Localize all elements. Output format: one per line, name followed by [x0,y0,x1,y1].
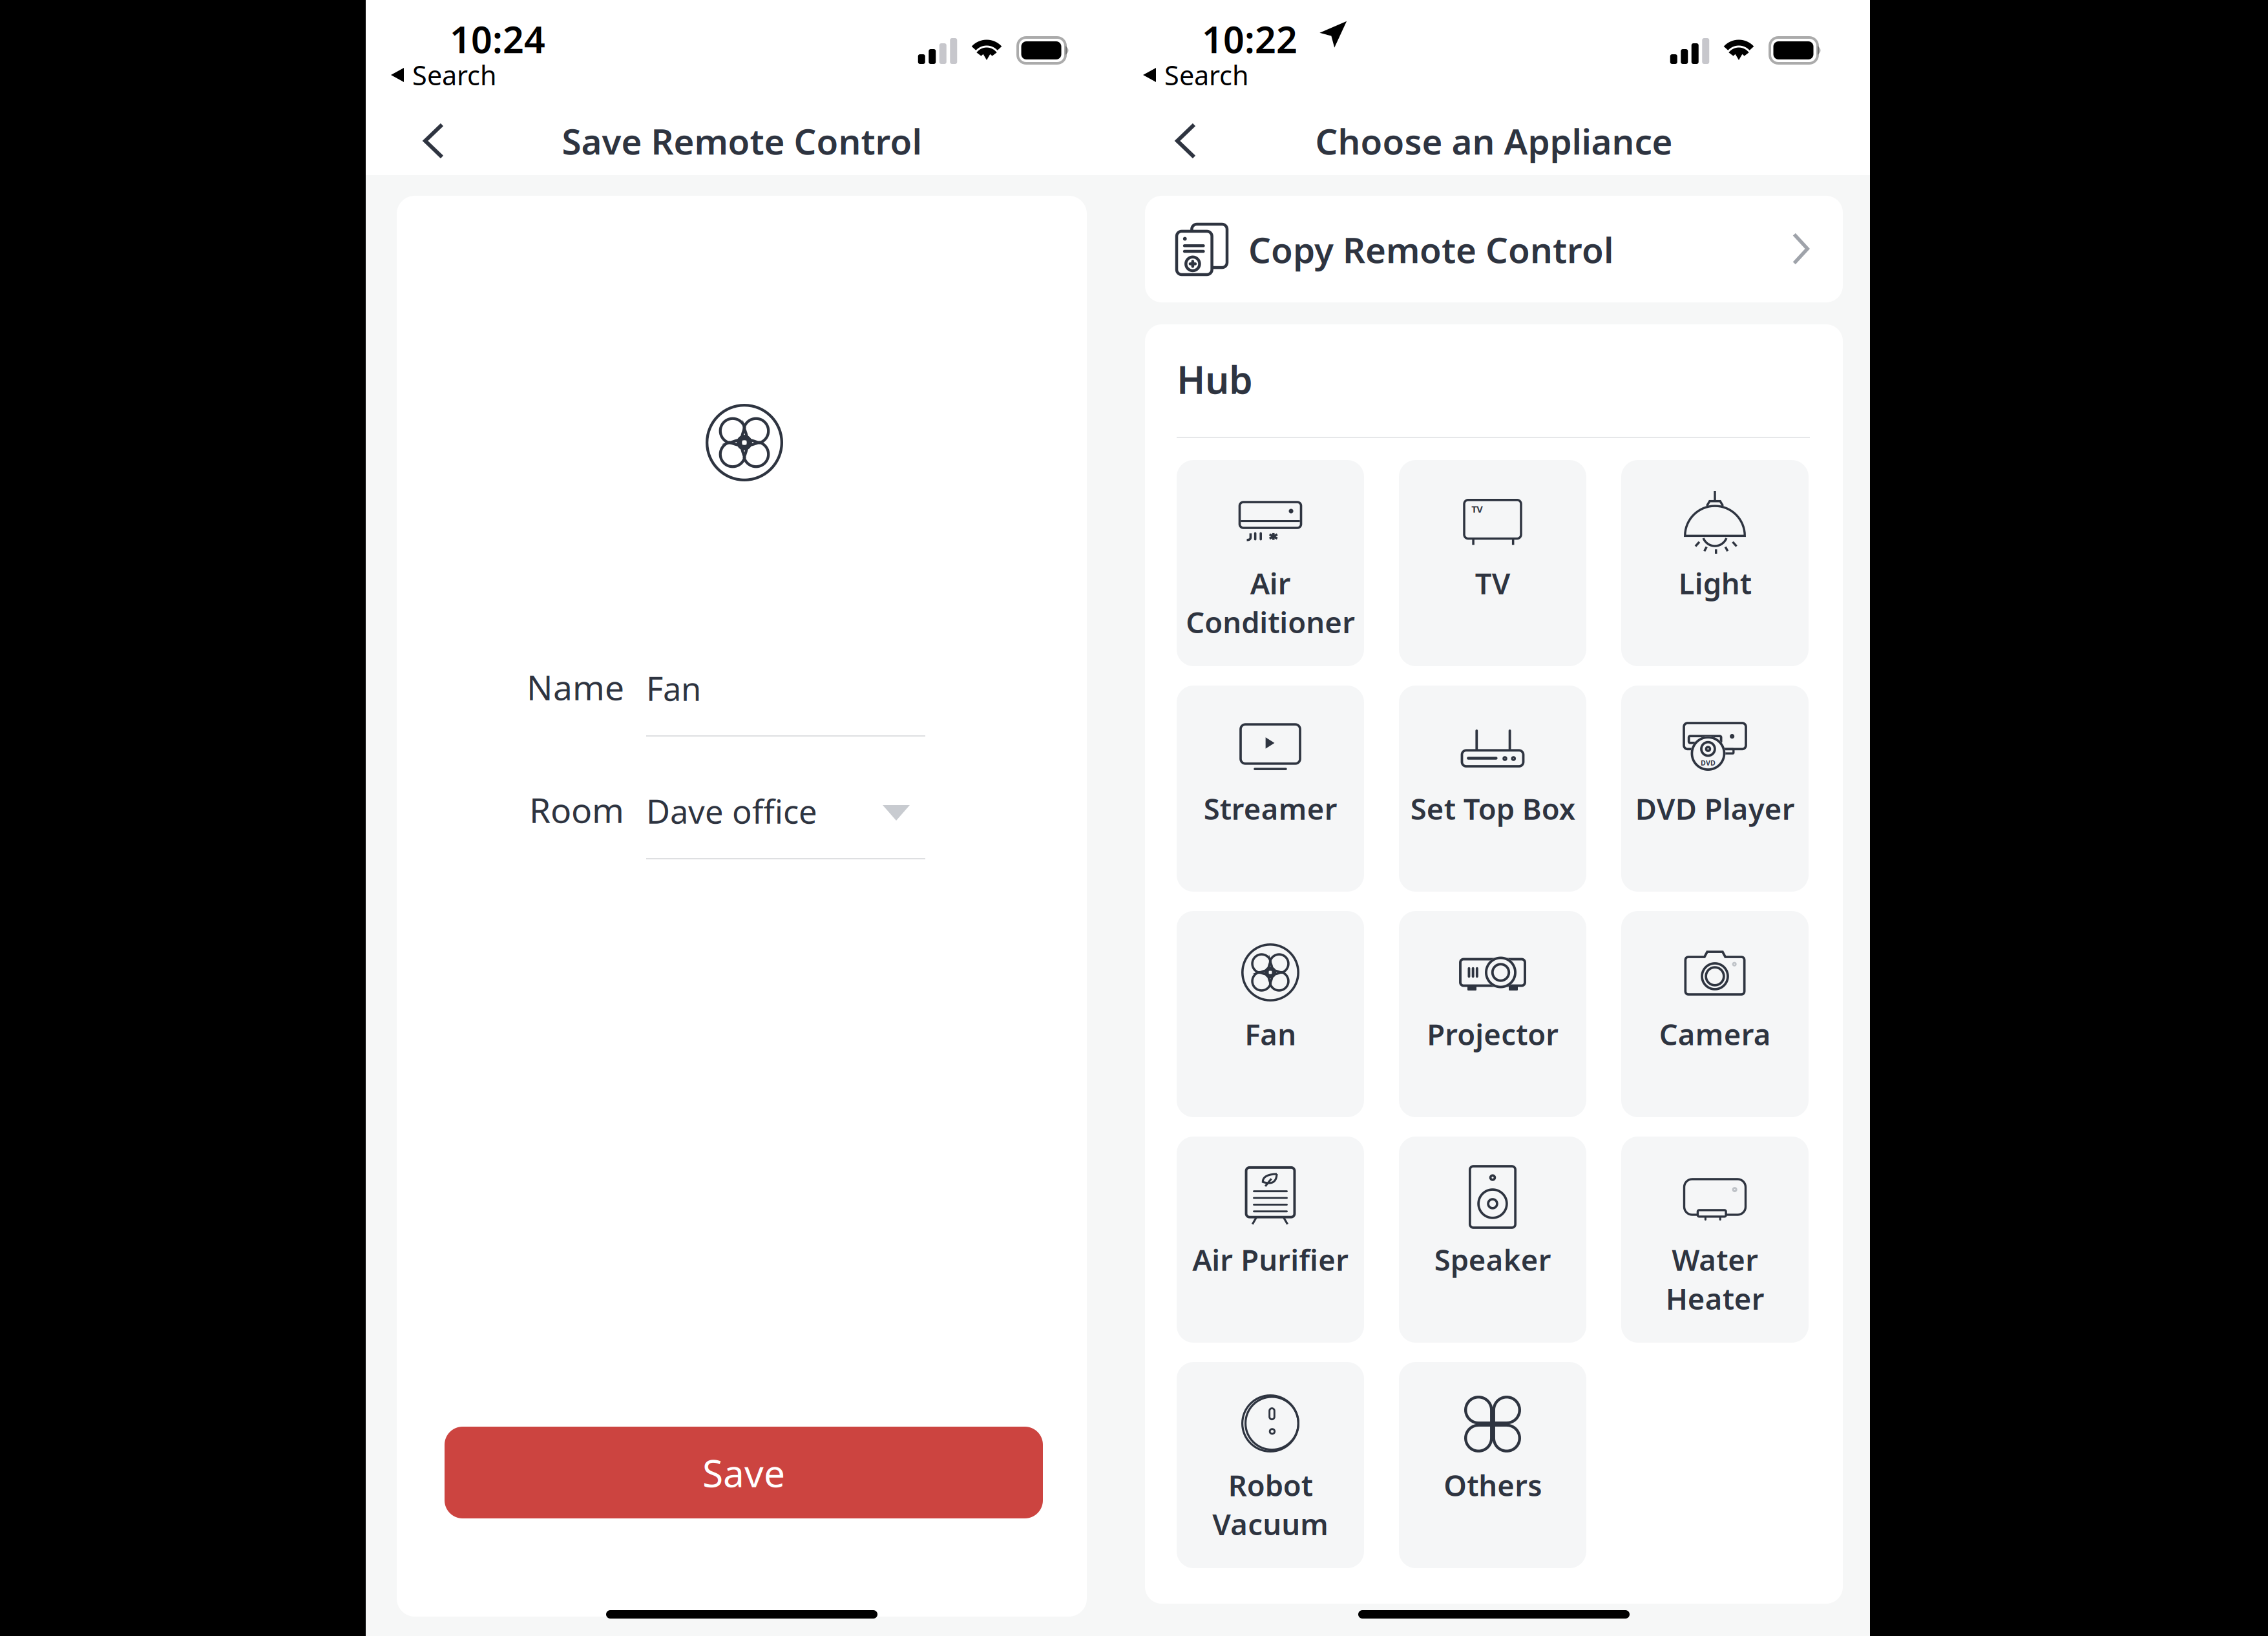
button[interactable]: Projector [1399,911,1586,1117]
staticText: Room [529,787,624,832]
staticText: Search [1164,57,1249,93]
button[interactable]: Speaker [1399,1137,1586,1343]
staticText: 10:24 [450,14,545,63]
staticText: 10:22 [1202,14,1297,63]
button[interactable]: Robot Vacuum [1177,1362,1364,1568]
button[interactable]: Set Top Box [1399,686,1586,892]
staticText: Save [702,1447,785,1498]
button[interactable]: Back [1153,120,1218,162]
staticText: Air Purifier [1192,1240,1349,1279]
staticText: TV [1471,503,1483,515]
staticText: Dave office [646,789,817,833]
staticText: Robot Vacuum [1212,1465,1328,1543]
staticText: Save Remote Control [562,117,922,164]
staticText: Streamer [1203,789,1337,828]
staticText: DVD Player [1635,789,1795,828]
staticText: Projector [1427,1014,1559,1053]
staticText: Search [412,57,497,93]
button[interactable]: TV [1399,460,1586,666]
staticText: Others [1444,1465,1542,1504]
button[interactable]: Back [401,120,466,162]
button[interactable]: Air Conditioner [1177,460,1364,666]
staticText: Copy Remote Control [1248,226,1613,273]
button[interactable]: Others [1399,1362,1586,1568]
staticText: Choose an Appliance [1315,117,1673,164]
button[interactable]: Light [1621,460,1809,666]
button[interactable]: Save [445,1427,1043,1518]
staticText: Name [527,664,624,710]
button[interactable]: Water Heater [1621,1137,1809,1343]
staticText: Camera [1659,1014,1771,1053]
staticText: Light [1678,563,1751,602]
staticText: Fan [646,666,701,710]
staticText: Fan [1244,1014,1296,1053]
staticText: Hub [1177,354,1253,404]
button[interactable]: Air Purifier [1177,1137,1364,1343]
button[interactable]: Streamer [1177,686,1364,892]
staticText: DVD [1701,758,1715,767]
staticText: TV [1475,563,1510,602]
button[interactable]: DVD [1621,686,1809,892]
button[interactable]: Copy Remote Control [1145,196,1843,302]
staticText: Speaker [1434,1240,1551,1279]
button[interactable]: Fan [1177,911,1364,1117]
staticText: Air Conditioner [1186,563,1355,641]
staticText: Water Heater [1665,1240,1764,1318]
button[interactable]: Camera [1621,911,1809,1117]
staticText: Set Top Box [1410,789,1575,828]
